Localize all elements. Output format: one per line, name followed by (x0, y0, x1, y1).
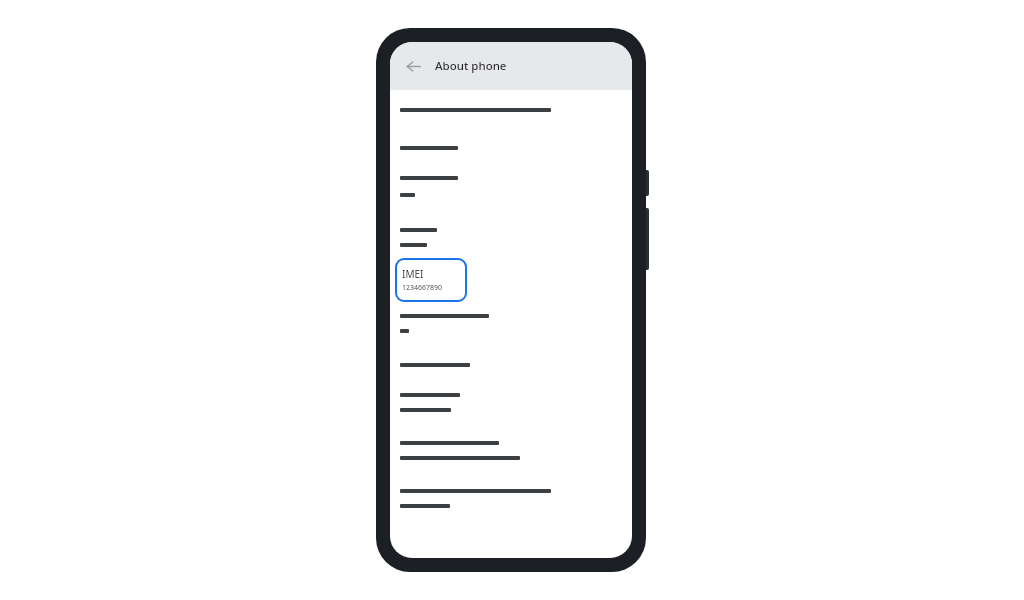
button[interactable]: IMEI (395, 258, 467, 302)
staticText: IMEI (402, 267, 424, 281)
staticText: 1234667890 (402, 283, 443, 293)
staticText: About phone (435, 58, 507, 74)
button[interactable]: Back (400, 53, 426, 79)
